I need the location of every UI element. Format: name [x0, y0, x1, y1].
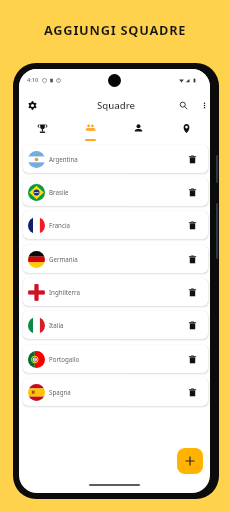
button[interactable]: Luoghi [162, 69, 210, 141]
button[interactable]: Argentina [23, 145, 208, 173]
button[interactable]: Giocatori [114, 69, 162, 141]
button[interactable]: Elimina Germania [184, 251, 200, 267]
staticText: AGGIUNGI SQUADRE [44, 21, 187, 38]
staticText: 4:10 [27, 76, 39, 84]
button[interactable]: Brasile [23, 178, 208, 206]
staticText: Inghilterra [49, 288, 80, 296]
button[interactable]: Elimina Italia [184, 317, 200, 333]
button[interactable]: Elimina Spagna [184, 384, 200, 400]
staticText: Portogallo [49, 355, 80, 363]
button[interactable]: Germania [23, 245, 208, 273]
button[interactable]: Inghilterra [23, 278, 208, 306]
button[interactable]: Italia [23, 311, 208, 339]
button[interactable]: Francia [23, 211, 208, 239]
button[interactable]: Elimina Inghilterra [184, 284, 200, 300]
button[interactable]: Spagna [23, 378, 208, 406]
button[interactable]: Squadre [66, 69, 114, 141]
button[interactable]: Elimina Brasile [184, 184, 200, 200]
button[interactable]: Cerca [175, 97, 191, 113]
button[interactable]: Portogallo [23, 345, 208, 373]
button[interactable]: Altre opzioni [196, 97, 210, 113]
staticText: Squadre [97, 99, 136, 112]
staticText: Spagna [49, 388, 71, 396]
button[interactable]: Elimina Argentina [184, 151, 200, 167]
button[interactable]: Aggiungi squadra [177, 448, 203, 474]
staticText: Brasile [49, 188, 69, 196]
button[interactable]: Elimina Portogallo [184, 351, 200, 367]
staticText: Italia [49, 321, 64, 329]
staticText: Francia [49, 221, 70, 229]
staticText: Argentina [49, 155, 78, 163]
button[interactable]: Elimina Francia [184, 217, 200, 233]
staticText: Germania [49, 255, 78, 263]
button[interactable]: Classifica [19, 69, 66, 141]
button[interactable]: Impostazioni [24, 97, 40, 113]
